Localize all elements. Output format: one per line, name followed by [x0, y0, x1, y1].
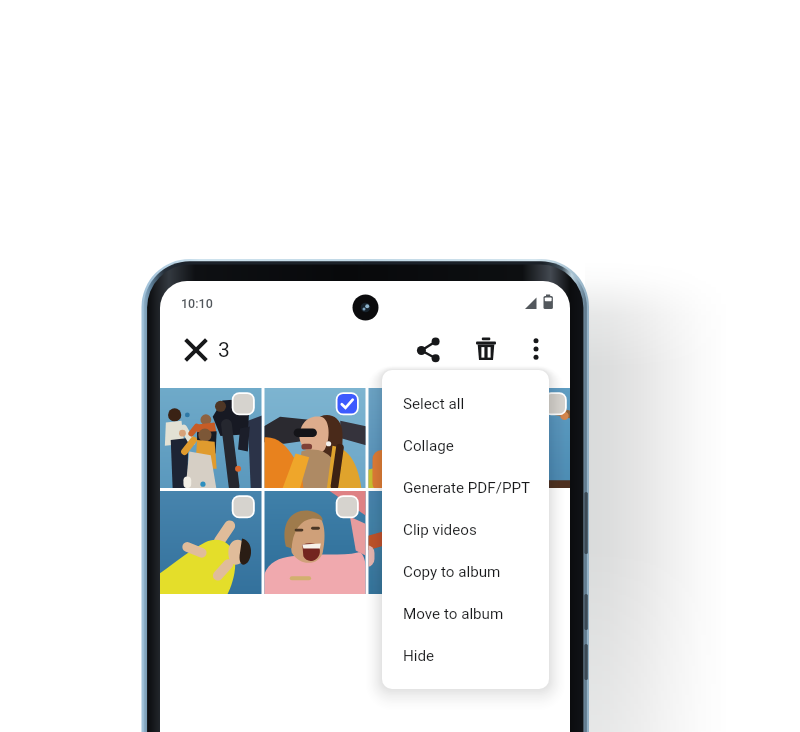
button[interactable]: Clip videos	[382, 509, 549, 551]
button[interactable]: Move to album	[382, 593, 549, 635]
staticText: Copy to album	[403, 563, 501, 581]
staticText: Generate PDF/PPT	[403, 479, 531, 497]
button[interactable]: Hide	[382, 635, 549, 677]
button[interactable]: More options	[520, 333, 552, 365]
button[interactable]: Copy to album	[382, 551, 549, 593]
staticText: Collage	[403, 437, 454, 455]
button[interactable]: Close selection	[178, 332, 214, 368]
button[interactable]: Select all	[382, 383, 549, 425]
staticText: Clip videos	[403, 521, 477, 539]
button[interactable]: Share	[412, 333, 446, 367]
staticText: Select all	[403, 395, 465, 413]
staticText: Move to album	[403, 605, 504, 623]
button[interactable]: Delete	[469, 333, 503, 367]
button[interactable]: Generate PDF/PPT	[382, 467, 549, 509]
staticText: 10:10	[181, 296, 213, 311]
button[interactable]: Collage	[382, 425, 549, 467]
staticText: 3	[218, 338, 230, 363]
staticText: Hide	[403, 647, 435, 665]
